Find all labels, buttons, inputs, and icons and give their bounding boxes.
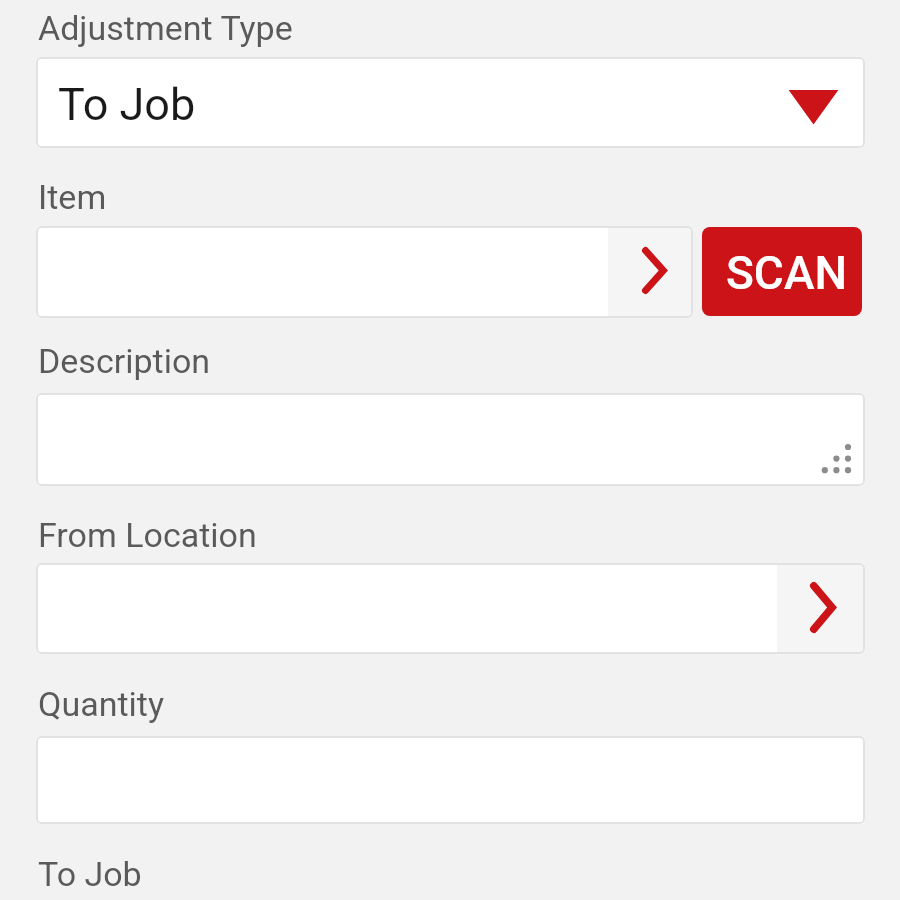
staticText: Quantity bbox=[38, 684, 165, 724]
staticText: To Job bbox=[58, 78, 196, 131]
button[interactable]: Choose item bbox=[608, 226, 692, 318]
staticText: Adjustment Type bbox=[38, 8, 293, 48]
staticText: Description bbox=[38, 341, 211, 381]
staticText: SCAN bbox=[726, 246, 848, 300]
button[interactable]: SCAN bbox=[702, 227, 862, 316]
button[interactable]: To Job bbox=[36, 57, 865, 148]
button[interactable]: Item number bbox=[36, 226, 608, 318]
staticText: From Location bbox=[38, 515, 257, 555]
button[interactable] bbox=[36, 393, 865, 486]
button[interactable]: Choose from location bbox=[777, 563, 865, 654]
button[interactable] bbox=[36, 736, 865, 824]
staticText: To Job bbox=[38, 854, 142, 894]
staticText: Item bbox=[38, 177, 107, 217]
button[interactable]: From location bbox=[36, 563, 777, 654]
